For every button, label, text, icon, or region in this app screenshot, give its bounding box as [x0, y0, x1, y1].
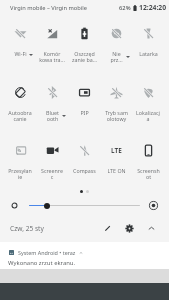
other: Brightness — [11, 202, 18, 209]
button[interactable]: Przesyłan ie — [4, 144, 36, 188]
button[interactable]: Autoobra canie — [4, 86, 36, 130]
staticText: Latarka — [139, 50, 158, 57]
button[interactable]: Bluet ooth — [36, 86, 68, 130]
button[interactable]: Screenre c — [36, 144, 68, 188]
button[interactable]: Settings — [125, 224, 134, 233]
staticText: LTE ON — [107, 167, 126, 174]
staticText: Autoobra canie — [8, 109, 32, 123]
staticText: Komór kowa tra... — [39, 50, 65, 64]
staticText: Screensh ot — [137, 167, 160, 181]
button[interactable]: Compass — [68, 144, 100, 188]
button[interactable]: Wi-Fi — [4, 27, 36, 71]
staticText: Czw, 25 sty — [10, 224, 44, 233]
staticText: 12:24:20 — [139, 3, 167, 12]
button[interactable]: LTE — [100, 144, 132, 188]
button[interactable]: Lokalizacj a — [132, 86, 164, 130]
staticText: Nie prz... — [110, 50, 123, 64]
staticText: Screenre c — [41, 167, 63, 181]
staticText: System Android • teraz — [18, 249, 76, 256]
staticText: Tryb sam olotowy — [105, 109, 128, 123]
staticText: Virgin mobile – Virgin mobile — [10, 4, 87, 12]
button[interactable]: Nie prz... — [100, 27, 132, 71]
staticText: Oszczęd zanie ba... — [72, 50, 97, 64]
button[interactable]: System Android • teraz — [0, 242, 169, 269]
button[interactable]: Edit — [103, 224, 112, 233]
staticText: Bluet ooth — [46, 109, 59, 123]
staticText: PIP — [80, 109, 89, 116]
button[interactable]: Oszczęd zanie ba... — [68, 27, 100, 71]
button[interactable]: Collapse — [147, 224, 156, 233]
staticText: Compass — [73, 167, 96, 174]
staticText: Wykonano zrzut ekranu. — [8, 259, 76, 267]
staticText: Wi-Fi — [14, 50, 27, 57]
other: Auto brightness — [149, 201, 158, 210]
staticText: Lokalizacj a — [136, 109, 160, 123]
button[interactable]: PIP — [68, 86, 100, 130]
button[interactable]: Komór kowa tra... — [36, 27, 68, 71]
staticText: 62% — [119, 4, 131, 12]
staticText: LTE — [111, 146, 122, 155]
button[interactable]: Screensh ot — [132, 144, 164, 188]
button[interactable]: Latarka — [132, 27, 164, 71]
staticText: Przesyłan ie — [8, 167, 32, 181]
button[interactable]: Tryb sam olotowy — [100, 86, 132, 130]
